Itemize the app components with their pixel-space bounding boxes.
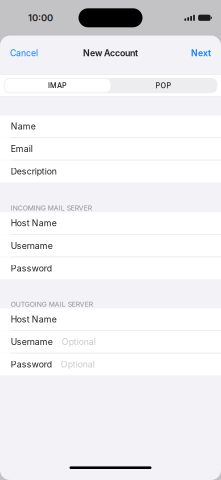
button[interactable]: Name [0,115,221,137]
button[interactable]: Username [0,235,221,257]
staticText: Optional [61,359,95,370]
button[interactable]: Password [0,257,221,279]
staticText: IMAP [48,81,67,90]
staticText: Email [11,144,33,154]
button[interactable]: Username [0,331,221,353]
button[interactable]: POP [110,79,216,92]
staticText: Username [11,240,53,251]
staticText: OUTGOING MAIL SERVER [11,300,93,308]
staticText: 10:00 [28,12,53,23]
staticText: INCOMING MAIL SERVER [11,204,92,212]
button[interactable]: Description [0,160,221,182]
staticText: Host Name [11,218,57,228]
staticText: Username [11,337,53,347]
button[interactable]: IMAP [4,79,110,92]
button[interactable]: Password [0,353,221,375]
staticText: Cancel [10,48,38,58]
staticText: Name [11,121,36,131]
staticText: Description [11,166,57,177]
staticText: Host Name [11,314,57,324]
button[interactable]: Cancel [0,43,47,63]
button[interactable]: Host Name [0,308,221,330]
button[interactable]: Host Name [0,212,221,234]
staticText: Password [11,359,52,370]
staticText: Optional [62,337,96,347]
staticText: Password [11,263,52,274]
button[interactable]: Email [0,138,221,160]
button[interactable]: Next [182,43,221,63]
staticText: New Account [83,48,138,58]
staticText: POP [155,81,171,90]
staticText: Next [191,48,211,58]
